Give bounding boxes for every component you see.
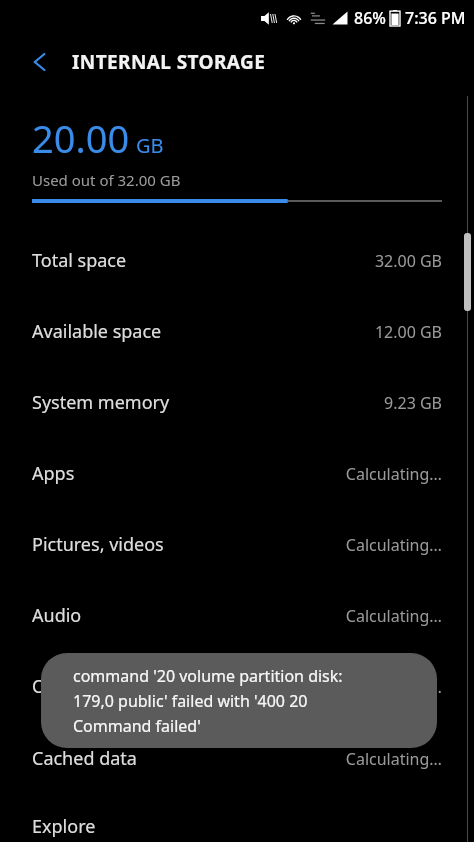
button[interactable]: Cached data [0, 723, 474, 794]
staticText: 9.23 GB [384, 392, 442, 414]
staticText: 12.00 GB [374, 321, 442, 343]
staticText: Cached data [32, 746, 137, 771]
staticText: System memory [32, 390, 170, 415]
staticText: Calculating… [345, 463, 442, 485]
staticText: Command failed' [73, 715, 201, 737]
staticText: Available space [32, 319, 162, 344]
staticText: command '20 volume partition disk: [73, 665, 343, 687]
staticText: Apps [32, 461, 75, 486]
staticText: Used out of 32.00 GB [32, 170, 181, 190]
staticText: Explore [32, 814, 96, 839]
button[interactable]: Available space [0, 296, 474, 367]
staticText: 32.00 GB [374, 250, 442, 272]
staticText: Calculating… [345, 676, 442, 698]
staticText: Total space [32, 248, 127, 273]
staticText: Other [32, 674, 82, 699]
button[interactable]: Back [20, 42, 60, 82]
staticText: INTERNAL STORAGE [72, 49, 266, 75]
button[interactable]: System memory [0, 367, 474, 438]
button[interactable]: Audio [0, 580, 474, 651]
staticText: 179,0 public' failed with '400 20 [73, 690, 308, 712]
staticText: Audio [32, 603, 82, 628]
button[interactable]: Explore [0, 791, 474, 842]
staticText: Calculating… [345, 605, 442, 627]
button[interactable]: Pictures, videos [0, 509, 474, 580]
staticText: 20.00 [32, 112, 130, 164]
staticText: Calculating… [345, 534, 442, 556]
button[interactable]: Other [0, 651, 474, 722]
staticText: Calculating… [345, 748, 442, 770]
button[interactable]: Total space [0, 225, 474, 296]
button[interactable]: Apps [0, 438, 474, 509]
staticText: 7:36 PM [405, 7, 466, 29]
staticText: Pictures, videos [32, 532, 164, 557]
staticText: 86% [354, 7, 386, 29]
staticText: GB [136, 132, 164, 159]
